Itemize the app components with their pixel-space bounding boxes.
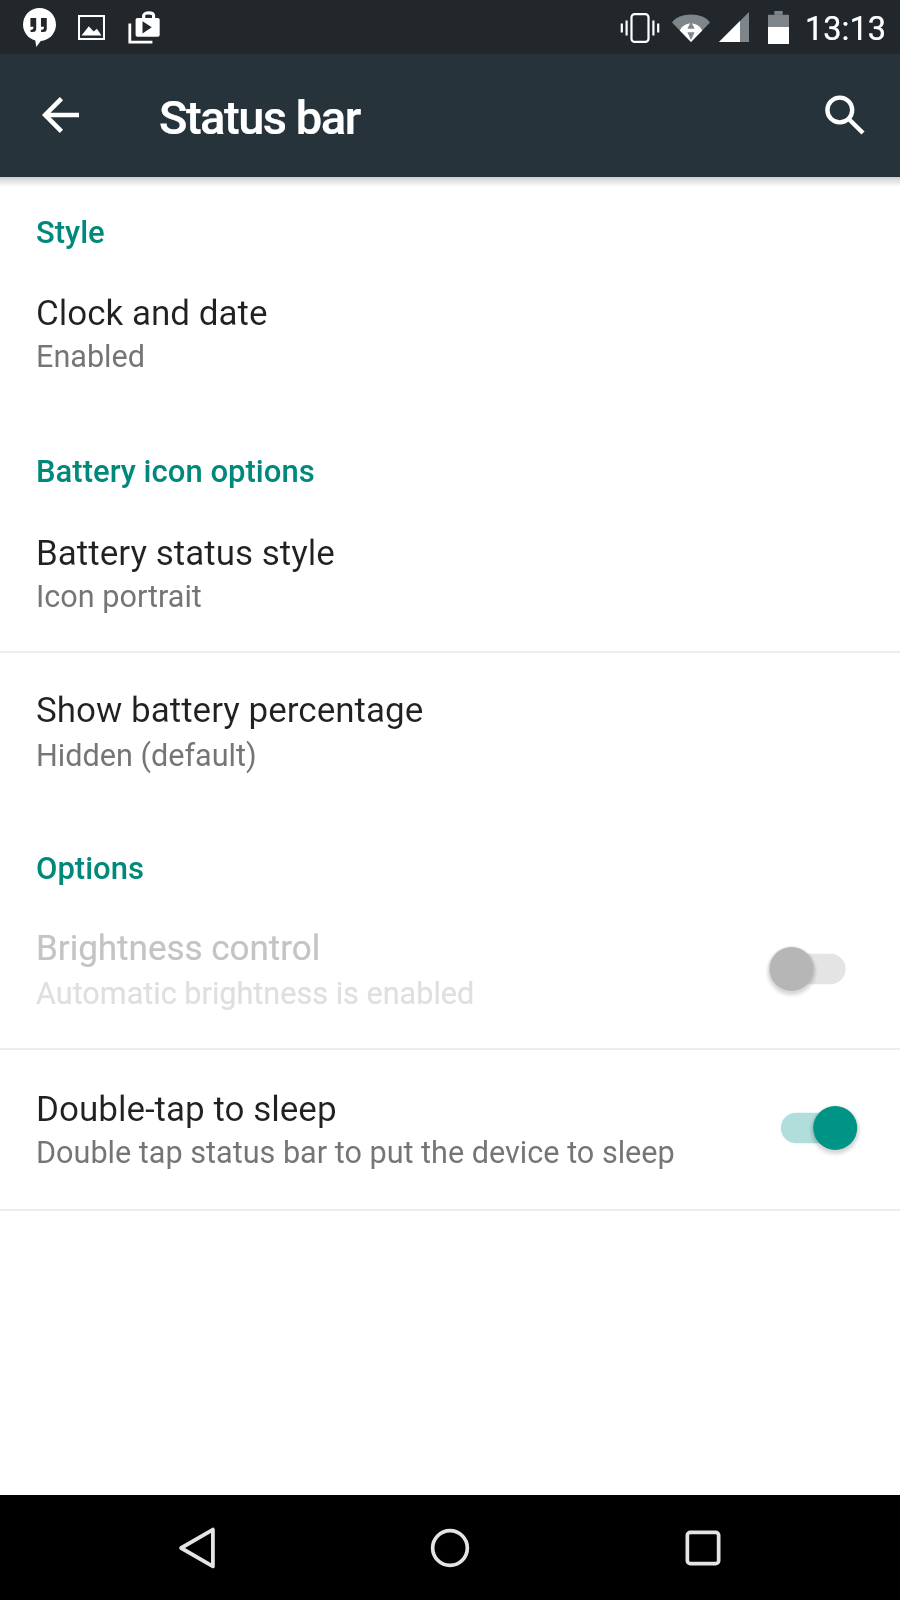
staticText: Show battery percentage (36, 690, 424, 731)
button[interactable]: Search (806, 79, 879, 152)
button[interactable]: Switch on (758, 1090, 874, 1166)
staticText: Double-tap to sleep (36, 1089, 337, 1130)
button[interactable]: Recent apps (655, 1500, 751, 1596)
staticText: Double tap status bar to put the device … (36, 1135, 675, 1171)
staticText: 13:13 (805, 10, 886, 48)
staticText: Options (36, 850, 145, 886)
staticText: Brightness control (36, 928, 321, 969)
staticText: Hidden (default) (36, 738, 257, 774)
staticText: Battery icon options (36, 453, 315, 489)
button[interactable]: Double-tap to sleep (0, 1050, 900, 1208)
staticText: Style (36, 214, 105, 250)
staticText: Enabled (36, 339, 146, 375)
staticText: Clock and date (36, 293, 268, 334)
staticText: Battery status style (36, 533, 335, 574)
button[interactable]: Switch off (758, 931, 874, 1007)
staticText: Status bar (159, 90, 360, 145)
staticText: Automatic brightness is enabled (36, 976, 475, 1012)
button[interactable]: Home (402, 1500, 498, 1596)
button[interactable]: Battery status style (0, 506, 900, 651)
button[interactable]: Show battery percentage (0, 653, 900, 800)
staticText: Icon portrait (36, 579, 202, 615)
button[interactable]: Brightness control (0, 900, 900, 1047)
button[interactable]: Back (149, 1500, 245, 1596)
button[interactable]: Clock and date (0, 266, 900, 396)
button[interactable]: Navigate up (25, 79, 98, 152)
